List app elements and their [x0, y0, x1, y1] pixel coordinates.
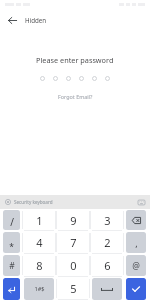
staticText: Security keyboard — [14, 199, 53, 205]
button[interactable] — [92, 278, 122, 300]
button[interactable]: 0 — [56, 254, 90, 277]
button[interactable]: 7 — [56, 231, 90, 254]
staticText: 8 — [36, 258, 43, 273]
button[interactable]: 4 — [22, 231, 56, 254]
staticText: # — [9, 260, 15, 272]
staticText: Hidden — [25, 16, 47, 24]
staticText: 0 — [70, 258, 77, 273]
button[interactable] — [126, 210, 146, 230]
staticText: 9 — [70, 213, 77, 228]
button[interactable]: , — [126, 232, 146, 253]
button[interactable]: @ — [126, 255, 146, 276]
staticText: 6 — [104, 258, 111, 273]
button[interactable]: 9 — [56, 209, 90, 231]
staticText: 7 — [70, 235, 77, 250]
button[interactable]: Back — [4, 12, 21, 29]
staticText: * — [9, 241, 14, 253]
button[interactable]: * — [3, 232, 20, 253]
button[interactable]: 1#$ — [24, 278, 54, 300]
button[interactable]: Forgot Email? — [58, 93, 93, 100]
button[interactable]: 6 — [90, 254, 124, 277]
button[interactable]: # — [3, 255, 20, 276]
staticText: 4 — [36, 235, 43, 250]
button[interactable]: 3 — [90, 209, 124, 231]
staticText: Please enter password — [36, 55, 114, 65]
staticText: 3 — [104, 213, 111, 228]
button[interactable] — [3, 278, 20, 300]
button[interactable]: / — [3, 210, 20, 230]
staticText: , — [135, 237, 138, 249]
staticText: 1#$ — [34, 285, 45, 293]
button[interactable] — [126, 278, 146, 300]
staticText: @ — [132, 260, 140, 272]
button[interactable]: 2 — [90, 231, 124, 254]
button[interactable]: 1 — [22, 209, 56, 231]
button[interactable]: 8 — [22, 254, 56, 277]
staticText: 1 — [36, 213, 43, 228]
staticText: 5 — [70, 281, 77, 296]
button[interactable]: Keyboard settings — [136, 197, 146, 207]
staticText: 2 — [104, 235, 111, 250]
staticText: / — [10, 215, 14, 229]
button[interactable]: 5 — [56, 277, 90, 300]
